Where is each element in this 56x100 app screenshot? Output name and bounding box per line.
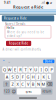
- button[interactable]: I: [39, 66, 43, 73]
- button[interactable]: Request Ride: [6, 41, 31, 46]
- staticText: L: [48, 74, 50, 79]
- button[interactable]: U: [33, 66, 38, 73]
- staticText: U: [34, 67, 37, 72]
- button[interactable]: return: [41, 88, 52, 95]
- button[interactable]: A: [5, 74, 9, 80]
- staticText: Where do you need to be picked up?: [7, 30, 45, 38]
- staticText: ☺: [12, 89, 16, 94]
- button[interactable]: D: [15, 74, 20, 80]
- staticText: S: [11, 74, 13, 79]
- staticText: return: [42, 90, 51, 93]
- staticText: C: [21, 81, 24, 87]
- staticText: G: [26, 74, 29, 79]
- button[interactable]: space: [17, 88, 41, 95]
- button[interactable]: Done: [43, 60, 54, 63]
- staticText: B: [32, 81, 35, 87]
- button[interactable]: V: [26, 81, 30, 87]
- staticText: H: [32, 74, 35, 79]
- staticText: O: [45, 67, 48, 72]
- staticText: J: [38, 74, 39, 79]
- staticText: Request a Ride: [4, 17, 27, 20]
- button[interactable]: Y: [28, 66, 33, 73]
- button[interactable]: N: [36, 81, 41, 87]
- button[interactable]: K: [41, 74, 46, 80]
- button[interactable]: Previous field: [2, 59, 6, 64]
- staticText: Y: [30, 67, 32, 72]
- button[interactable]: M: [41, 81, 46, 87]
- button[interactable]: P: [49, 66, 54, 73]
- staticText: D: [16, 74, 19, 79]
- staticText: space: [25, 90, 32, 93]
- staticText: A: [6, 74, 9, 79]
- button[interactable]: H: [31, 74, 35, 80]
- button[interactable]: 123: [3, 88, 11, 95]
- button[interactable]: T: [23, 66, 28, 73]
- button[interactable]: W: [7, 66, 12, 73]
- staticText: E: [14, 67, 16, 72]
- staticText: Q: [3, 67, 6, 72]
- staticText: Request a Ride: [13, 4, 43, 10]
- button[interactable]: ⇧: [3, 81, 9, 87]
- staticText: Hello: [7, 26, 15, 30]
- button[interactable]: X: [15, 81, 20, 87]
- staticText: V: [27, 81, 29, 87]
- button[interactable]: G: [26, 74, 30, 80]
- staticText: Z: [11, 81, 13, 87]
- staticText: N: [37, 81, 40, 87]
- staticText: M: [42, 81, 46, 87]
- staticText: ⌄: [7, 59, 10, 64]
- button[interactable]: J: [36, 74, 41, 80]
- staticText: I: [40, 67, 41, 72]
- button[interactable]: F: [20, 74, 25, 80]
- staticText: ⌃: [2, 59, 5, 64]
- button[interactable]: Q: [2, 66, 7, 73]
- button[interactable]: E: [13, 66, 17, 73]
- staticText: F: [22, 74, 24, 79]
- staticText: W: [8, 67, 12, 72]
- staticText: Done: [45, 60, 53, 63]
- button[interactable]: ⌫: [46, 81, 53, 87]
- button[interactable]: Z: [10, 81, 15, 87]
- staticText: Request Ride: [9, 42, 29, 45]
- staticText: K: [43, 74, 45, 79]
- button[interactable]: O: [44, 66, 48, 73]
- staticText: .ııl ⬤ ▰: [41, 1, 52, 4]
- button[interactable]: Next field: [7, 59, 11, 64]
- staticText: X: [17, 81, 19, 87]
- staticText: ⌫: [47, 82, 53, 86]
- button[interactable]: R: [18, 66, 22, 73]
- button[interactable]: ☺: [11, 88, 16, 95]
- staticText: T: [24, 67, 26, 72]
- staticText: Notes / Details: [5, 22, 25, 26]
- staticText: 9:41: [4, 1, 11, 4]
- staticText: R: [19, 67, 21, 72]
- button[interactable]: B: [31, 81, 35, 87]
- staticText: 123: [4, 90, 10, 93]
- staticText: A driver will confirm shortly.: [2, 48, 41, 51]
- staticText: P: [50, 67, 52, 72]
- button[interactable]: S: [10, 74, 15, 80]
- button[interactable]: C: [20, 81, 25, 87]
- button[interactable]: L: [46, 74, 51, 80]
- staticText: ⇧: [5, 82, 8, 86]
